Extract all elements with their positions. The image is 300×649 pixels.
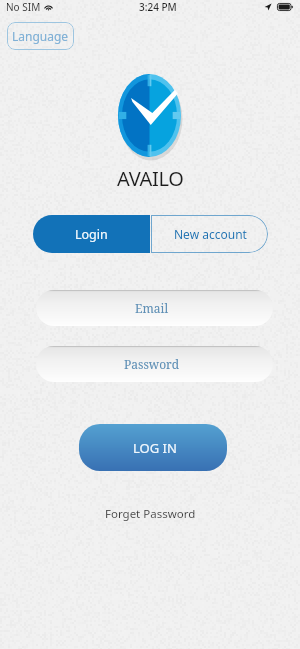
button[interactable]: Forget Password (105, 506, 196, 522)
button[interactable]: Email (36, 290, 273, 326)
staticText: 3:24 PM (139, 0, 177, 14)
staticText: New account (174, 226, 247, 242)
staticText: Email (135, 300, 169, 316)
staticText: LOG IN (133, 439, 177, 457)
staticText: No SIM (6, 0, 41, 14)
button[interactable]: LOG IN (79, 424, 227, 471)
button[interactable]: New account (151, 215, 268, 253)
staticText: Password (124, 356, 180, 372)
staticText: Language (12, 28, 69, 44)
button[interactable]: Login (33, 215, 150, 253)
button[interactable]: Password (36, 346, 273, 382)
staticText: Login (75, 226, 108, 243)
staticText: AVAILO (117, 165, 184, 192)
button[interactable]: Language (7, 22, 74, 50)
